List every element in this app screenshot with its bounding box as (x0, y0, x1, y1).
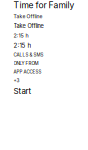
staticText: Take Offline (13, 22, 43, 29)
staticText: Start (13, 86, 31, 96)
staticText: 2:15 h (13, 42, 31, 49)
staticText: 2:15 h (13, 32, 28, 39)
staticText: ONLY FROM (13, 61, 38, 66)
staticText: +3 (13, 78, 19, 83)
staticText: Take Offline (13, 13, 42, 19)
staticText: Time for Family (13, 0, 74, 10)
staticText: CALLS & SMS (13, 52, 43, 58)
staticText: APP ACCESS (13, 69, 41, 75)
